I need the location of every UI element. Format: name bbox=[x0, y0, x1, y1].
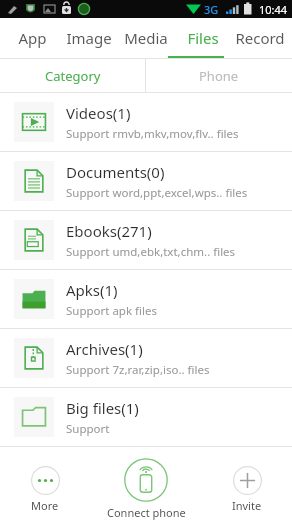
button[interactable]: Videos(1) bbox=[0, 93, 292, 152]
staticText: Documents(0) bbox=[66, 162, 165, 182]
staticText: Ebooks(271) bbox=[66, 221, 152, 241]
staticText: App bbox=[18, 28, 47, 48]
staticText: Support bbox=[66, 421, 110, 437]
button[interactable]: Connect phone bbox=[90, 458, 202, 520]
button[interactable]: Big files(1) bbox=[0, 388, 292, 447]
staticText: Media bbox=[124, 28, 168, 48]
button[interactable]: Media bbox=[117, 18, 174, 58]
button[interactable]: Category bbox=[0, 59, 145, 92]
staticText: Apks(1) bbox=[66, 280, 118, 300]
button[interactable]: Record bbox=[231, 18, 288, 58]
staticText: Archives(1) bbox=[66, 339, 143, 359]
button[interactable]: App bbox=[4, 18, 60, 58]
staticText: More bbox=[31, 498, 59, 513]
staticText: Support word,ppt,excel,wps.. files bbox=[66, 185, 248, 201]
staticText: Connect phone bbox=[107, 505, 186, 520]
staticText: Big files(1) bbox=[66, 398, 139, 418]
other: More bbox=[31, 466, 60, 495]
staticText: Support umd,ebk,txt,chm.. files bbox=[66, 244, 236, 260]
staticText: Record bbox=[235, 28, 285, 48]
button[interactable]: Phone bbox=[146, 59, 292, 92]
staticText: 3G bbox=[204, 2, 219, 17]
staticText: Support rmvb,mkv,mov,flv.. files bbox=[66, 126, 239, 142]
staticText: Files bbox=[187, 28, 219, 48]
staticText: 10:44 bbox=[259, 2, 288, 17]
button[interactable]: More bbox=[0, 458, 90, 520]
staticText: Support 7z,rar,zip,iso.. files bbox=[66, 362, 210, 378]
staticText: Image bbox=[66, 28, 112, 48]
other: Connect phone bbox=[124, 458, 168, 502]
staticText: Invite bbox=[232, 498, 262, 513]
button[interactable]: Apks(1) bbox=[0, 270, 292, 329]
button[interactable]: Files bbox=[174, 18, 231, 58]
staticText: Category bbox=[45, 67, 101, 85]
button[interactable]: Documents(0) bbox=[0, 152, 292, 211]
button[interactable]: Invite bbox=[202, 458, 292, 520]
other: Invite bbox=[233, 466, 262, 495]
button[interactable]: Ebooks(271) bbox=[0, 211, 292, 270]
button[interactable]: Image bbox=[60, 18, 117, 58]
staticText: Support apk files bbox=[66, 303, 157, 319]
staticText: Phone bbox=[199, 67, 239, 85]
button[interactable]: Archives(1) bbox=[0, 329, 292, 388]
staticText: Videos(1) bbox=[66, 103, 131, 123]
